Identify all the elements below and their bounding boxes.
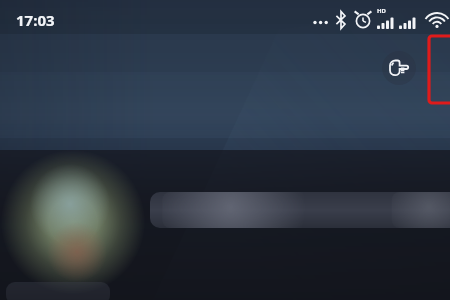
button[interactable] xyxy=(150,192,450,228)
button[interactable]: Pointer hint xyxy=(382,51,416,85)
